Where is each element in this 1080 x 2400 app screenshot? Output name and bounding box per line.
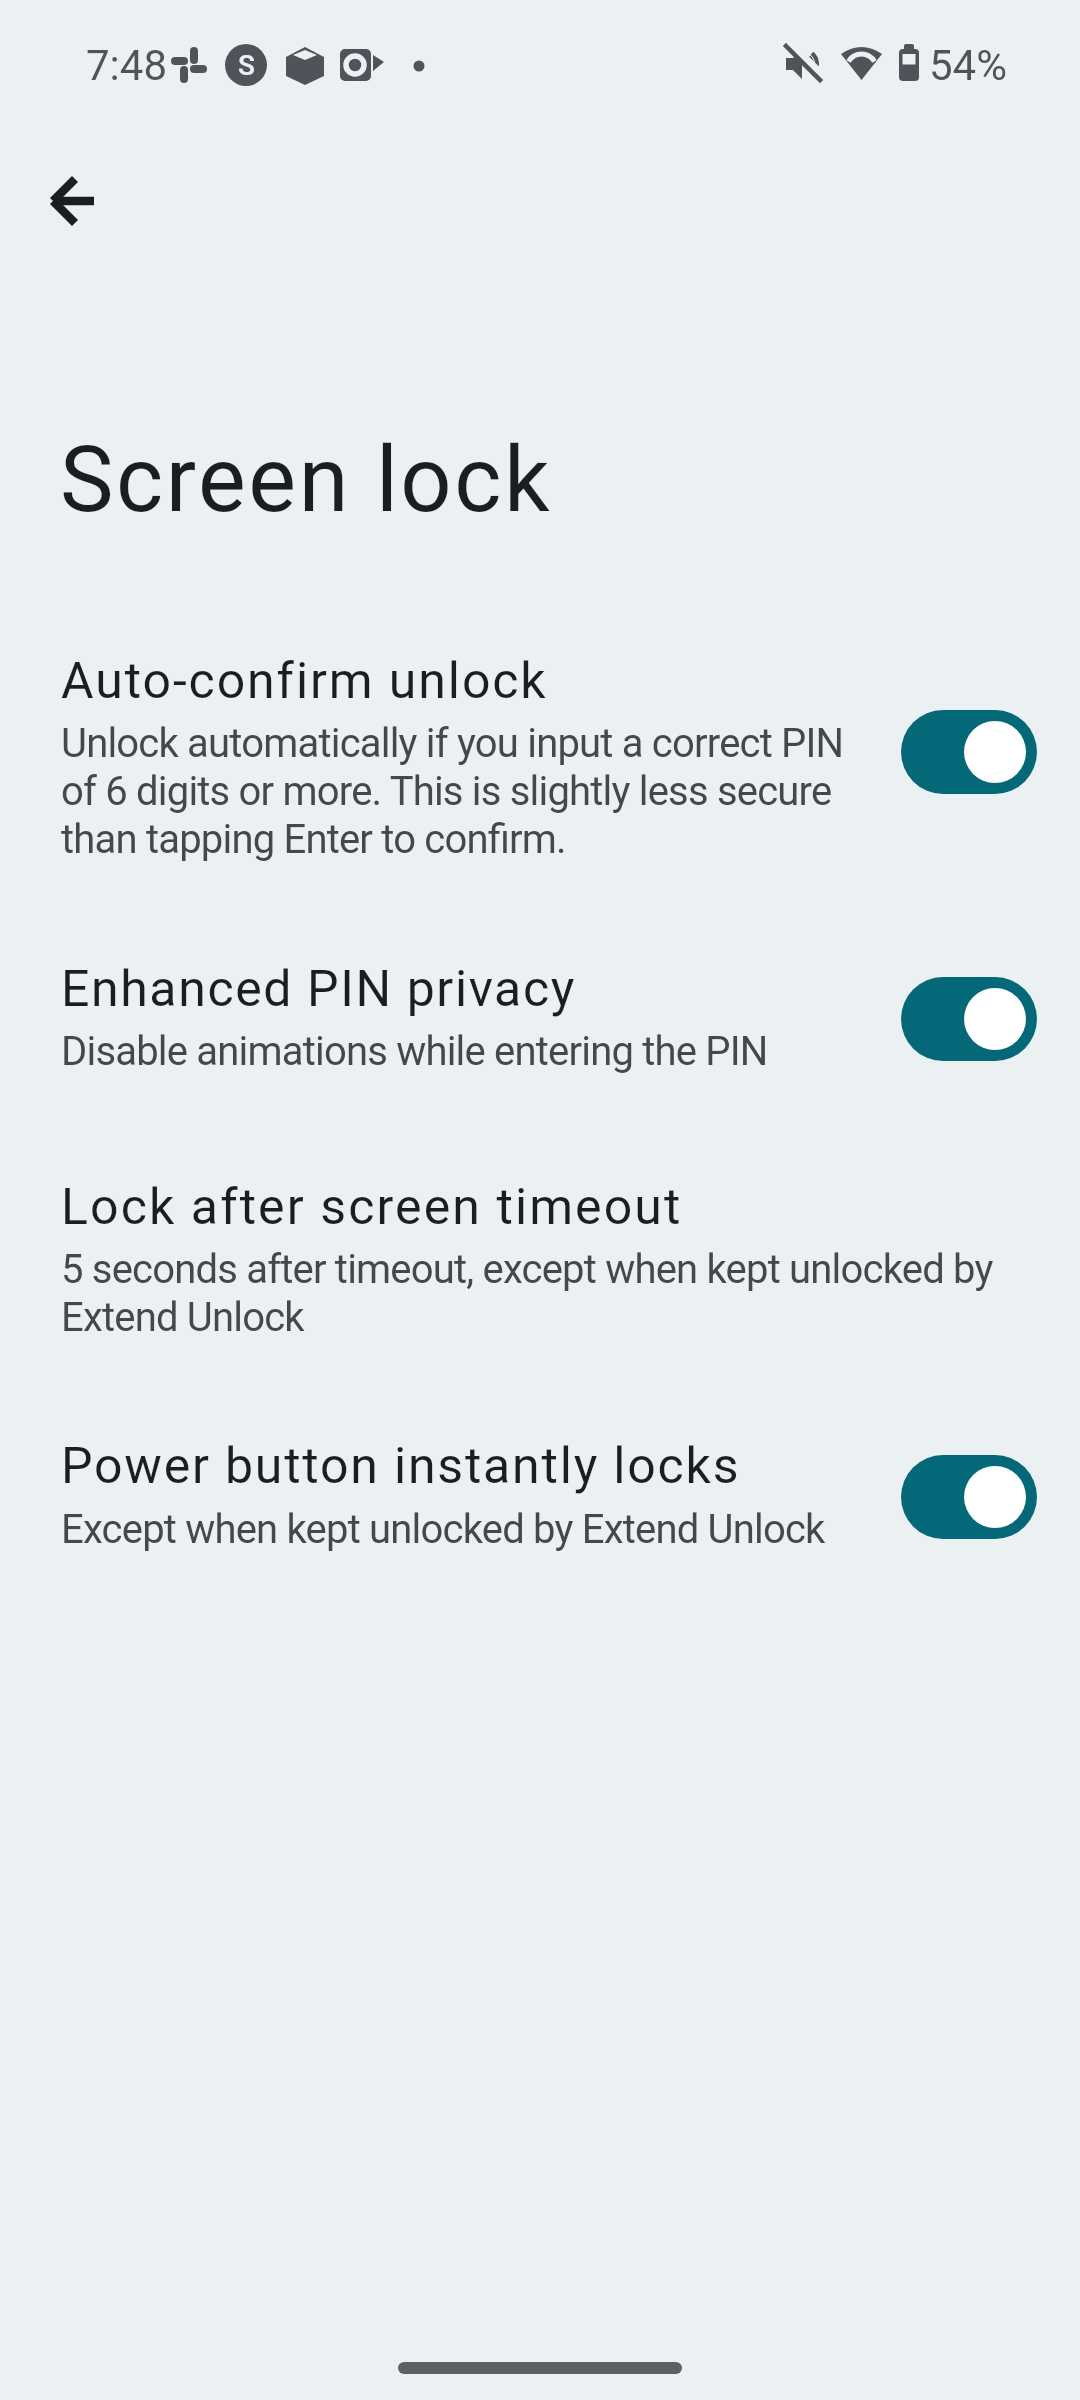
staticText: 7:48 [86, 41, 167, 90]
button[interactable]: Lock after screen timeout [0, 1150, 1080, 1365]
button[interactable] [901, 710, 1037, 794]
staticText: 54% [929, 41, 1007, 90]
button[interactable]: Enhanced PIN privacy [0, 930, 1080, 1100]
button[interactable] [901, 977, 1037, 1061]
staticText: 5 seconds after timeout, except when kep… [61, 1246, 993, 1341]
staticText: Auto-confirm unlock [61, 652, 548, 711]
staticText: Lock after screen timeout [61, 1178, 683, 1237]
staticText: S [238, 49, 255, 82]
button[interactable]: Power button instantly locks [0, 1410, 1080, 1580]
button[interactable] [44, 171, 104, 231]
button[interactable] [901, 1455, 1037, 1539]
staticText: Enhanced PIN privacy [61, 960, 576, 1019]
staticText: Disable animations while entering the PI… [61, 1028, 768, 1075]
staticText: Screen lock [60, 428, 553, 533]
staticText: Except when kept unlocked by Extend Unlo… [61, 1506, 825, 1553]
button[interactable]: Auto-confirm unlock [0, 612, 1080, 890]
staticText: Power button instantly locks [61, 1437, 741, 1496]
staticText: Unlock automatically if you input a corr… [61, 720, 844, 863]
